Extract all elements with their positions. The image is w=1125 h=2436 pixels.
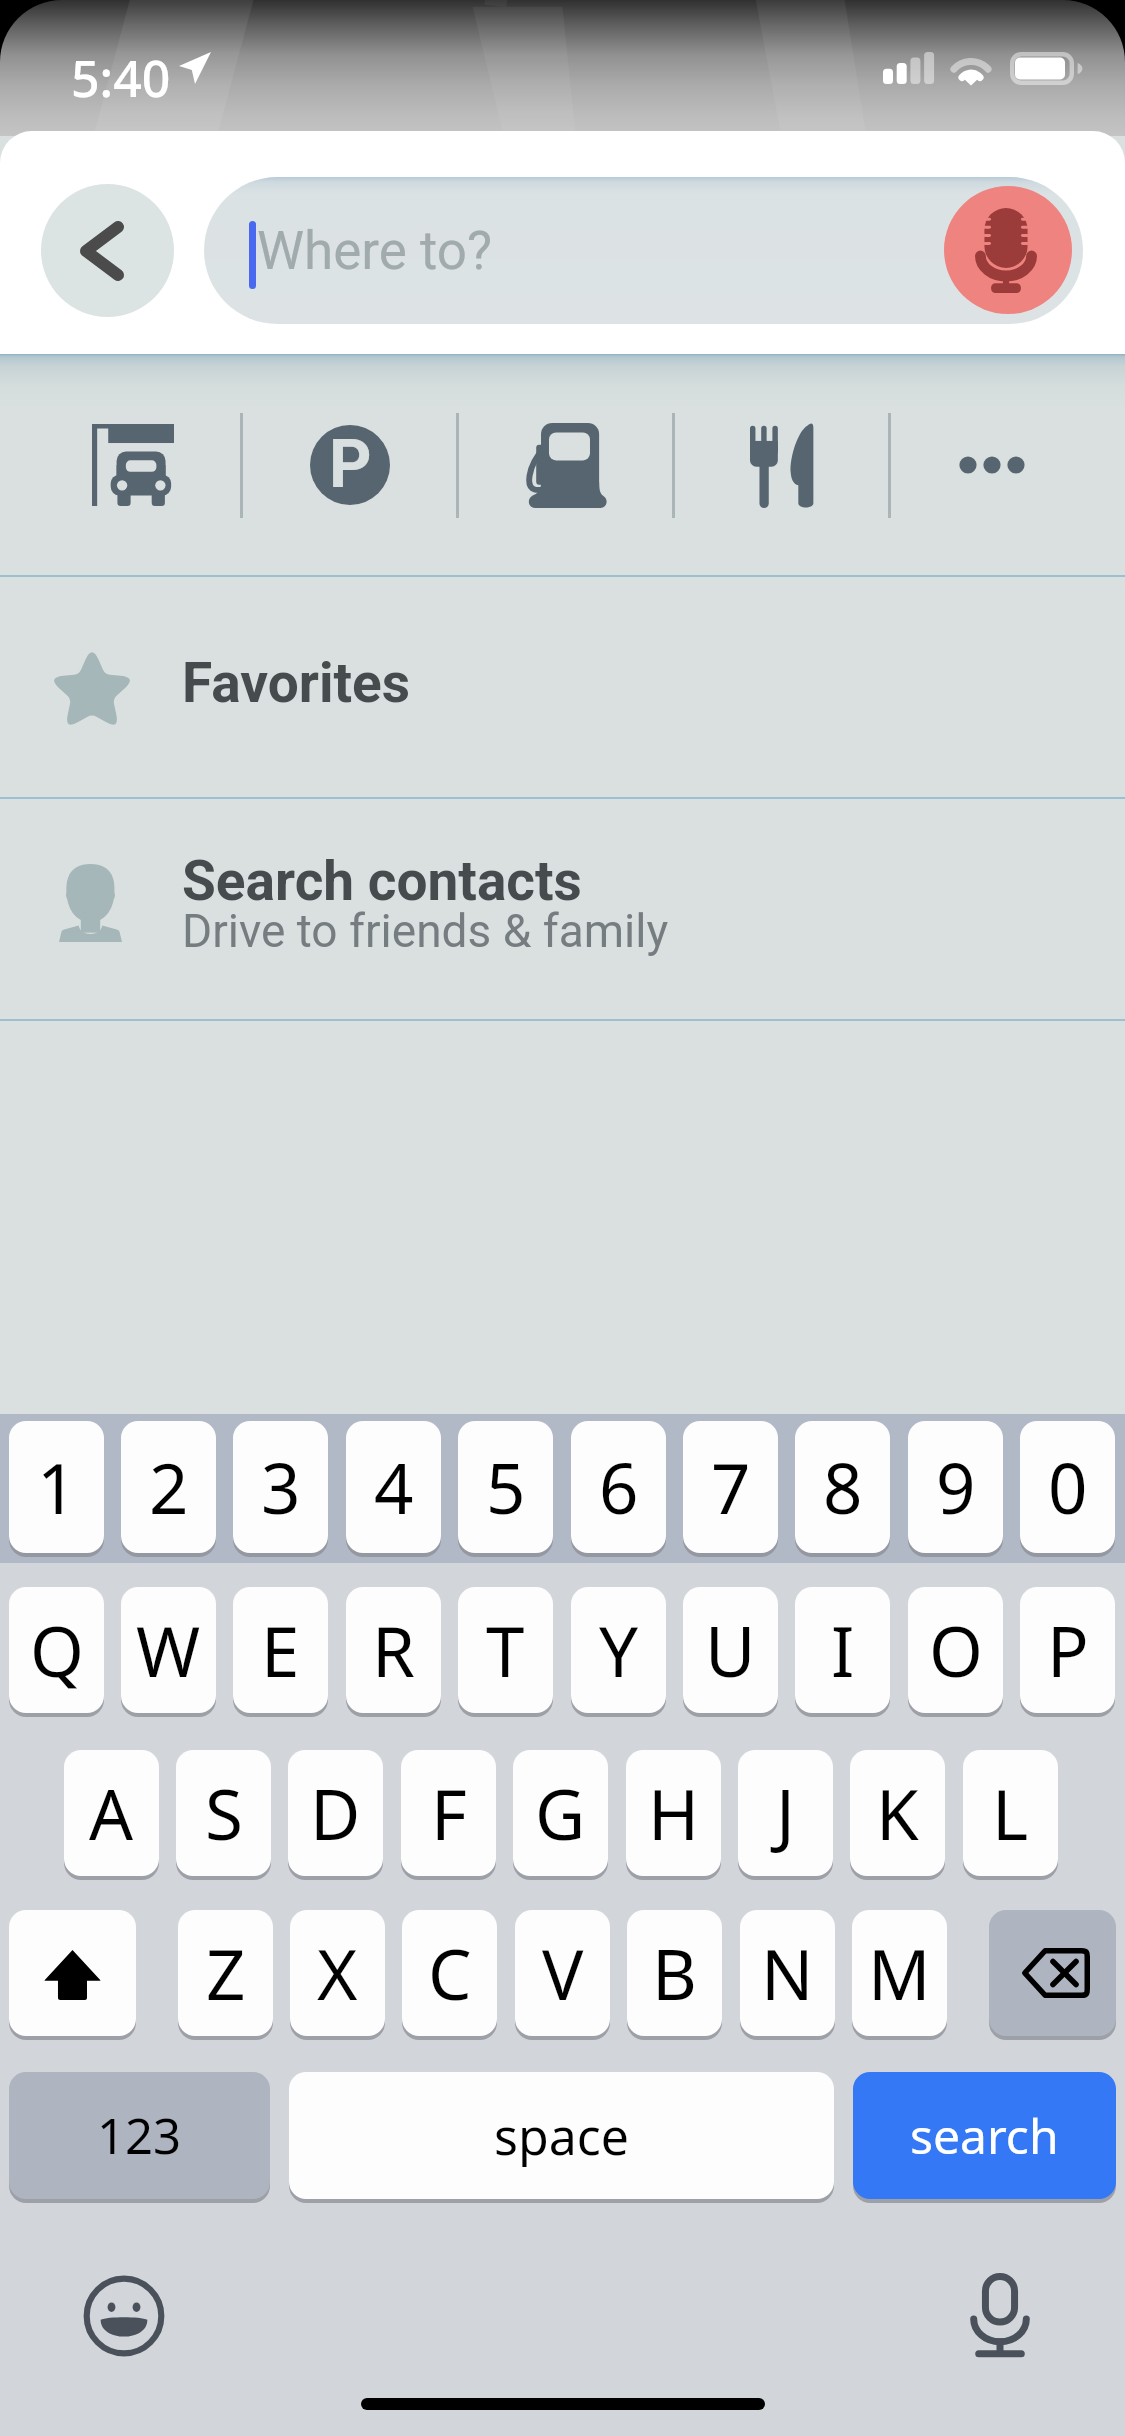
staticText: 6 bbox=[599, 1440, 639, 1534]
staticText: Drive to friends & family bbox=[182, 904, 669, 958]
button[interactable]: Y bbox=[571, 1587, 666, 1717]
staticText: 8 bbox=[823, 1440, 863, 1534]
button[interactable]: 8 bbox=[795, 1421, 890, 1557]
button[interactable]: L bbox=[963, 1750, 1058, 1880]
staticText: S bbox=[205, 1766, 243, 1860]
staticText: U bbox=[705, 1603, 756, 1697]
staticText: W bbox=[136, 1603, 201, 1697]
staticText: Where to? bbox=[257, 220, 493, 282]
button[interactable]: Back bbox=[41, 184, 174, 317]
button[interactable]: Search contacts bbox=[0, 799, 1125, 1019]
button[interactable]: 1 bbox=[9, 1421, 104, 1557]
staticText: space bbox=[494, 2102, 629, 2170]
staticText: search bbox=[910, 2103, 1059, 2168]
staticText: N bbox=[761, 1926, 814, 2020]
staticText: O bbox=[929, 1603, 983, 1697]
staticText: X bbox=[317, 1926, 358, 2020]
button[interactable]: W bbox=[121, 1587, 216, 1717]
button[interactable]: O bbox=[908, 1587, 1003, 1717]
button[interactable]: E bbox=[233, 1587, 328, 1717]
staticText: B bbox=[652, 1926, 697, 2020]
staticText: C bbox=[428, 1926, 472, 2020]
staticText: H bbox=[648, 1766, 700, 1860]
staticText: F bbox=[431, 1766, 467, 1860]
staticText: 2 bbox=[149, 1440, 189, 1534]
button[interactable]: Drive-through bbox=[0, 357, 240, 573]
staticText: 0 bbox=[1048, 1440, 1088, 1534]
staticText: 1 bbox=[37, 1440, 77, 1534]
button[interactable]: More options bbox=[891, 357, 1092, 573]
staticText: 3 bbox=[261, 1440, 301, 1534]
staticText: I bbox=[831, 1603, 855, 1697]
button[interactable]: G bbox=[513, 1750, 608, 1880]
button[interactable]: Z bbox=[178, 1910, 273, 2040]
staticText: T bbox=[486, 1603, 525, 1697]
button[interactable]: D bbox=[288, 1750, 383, 1880]
button[interactable]: 123 bbox=[9, 2072, 270, 2203]
staticText: A bbox=[89, 1766, 134, 1860]
staticText: Z bbox=[206, 1926, 246, 2020]
staticText: P bbox=[1047, 1603, 1089, 1697]
button[interactable]: 0 bbox=[1020, 1421, 1115, 1557]
button[interactable]: 9 bbox=[908, 1421, 1003, 1557]
button[interactable]: Where to? bbox=[204, 177, 1083, 324]
button[interactable]: Q bbox=[9, 1587, 104, 1717]
button[interactable]: T bbox=[458, 1587, 553, 1717]
button[interactable]: X bbox=[290, 1910, 385, 2040]
staticText: 4 bbox=[374, 1440, 414, 1534]
staticText: L bbox=[992, 1766, 1029, 1860]
button[interactable]: 5 bbox=[458, 1421, 553, 1557]
button[interactable]: B bbox=[627, 1910, 722, 2040]
button[interactable]: Delete bbox=[989, 1910, 1116, 2040]
button[interactable]: M bbox=[852, 1910, 947, 2040]
staticText: P bbox=[329, 426, 372, 503]
button[interactable]: Favorites bbox=[0, 577, 1125, 797]
button[interactable]: Shift bbox=[9, 1910, 136, 2040]
button[interactable]: J bbox=[738, 1750, 833, 1880]
staticText: E bbox=[261, 1603, 300, 1697]
staticText: K bbox=[876, 1766, 919, 1860]
staticText: Q bbox=[30, 1603, 84, 1697]
button[interactable]: 4 bbox=[346, 1421, 441, 1557]
button[interactable]: search bbox=[853, 2072, 1116, 2203]
button[interactable]: N bbox=[740, 1910, 835, 2040]
button[interactable]: space bbox=[289, 2072, 834, 2203]
button[interactable]: Parking bbox=[243, 357, 456, 573]
staticText: 5:40 bbox=[71, 44, 171, 112]
button[interactable]: Dictation bbox=[950, 2266, 1050, 2366]
button[interactable]: Gas bbox=[459, 357, 672, 573]
button[interactable]: 3 bbox=[233, 1421, 328, 1557]
staticText: 7 bbox=[711, 1440, 751, 1534]
button[interactable]: I bbox=[795, 1587, 890, 1717]
button[interactable]: U bbox=[683, 1587, 778, 1717]
staticText: G bbox=[535, 1766, 586, 1860]
staticText: V bbox=[542, 1926, 584, 2020]
button[interactable]: V bbox=[515, 1910, 610, 2040]
button[interactable]: 7 bbox=[683, 1421, 778, 1557]
staticText: 9 bbox=[936, 1440, 976, 1534]
button[interactable]: 2 bbox=[121, 1421, 216, 1557]
staticText: J bbox=[776, 1766, 795, 1860]
button[interactable]: 6 bbox=[571, 1421, 666, 1557]
staticText: M bbox=[868, 1926, 931, 2020]
button[interactable]: Emoji bbox=[74, 2266, 174, 2366]
button[interactable]: P bbox=[1020, 1587, 1115, 1717]
staticText: Search contacts bbox=[182, 849, 582, 913]
staticText: D bbox=[310, 1766, 361, 1860]
staticText: 123 bbox=[97, 2102, 182, 2169]
button[interactable]: A bbox=[64, 1750, 159, 1880]
staticText: Y bbox=[599, 1603, 639, 1697]
button[interactable]: R bbox=[346, 1587, 441, 1717]
staticText: 5 bbox=[486, 1440, 526, 1534]
button[interactable]: Voice search bbox=[944, 186, 1072, 314]
button[interactable]: K bbox=[850, 1750, 945, 1880]
staticText: R bbox=[372, 1603, 415, 1697]
button[interactable]: Food bbox=[675, 357, 888, 573]
staticText: Favorites bbox=[182, 651, 411, 715]
button[interactable]: H bbox=[626, 1750, 721, 1880]
button[interactable]: S bbox=[176, 1750, 271, 1880]
button[interactable]: F bbox=[401, 1750, 496, 1880]
button[interactable]: C bbox=[402, 1910, 497, 2040]
